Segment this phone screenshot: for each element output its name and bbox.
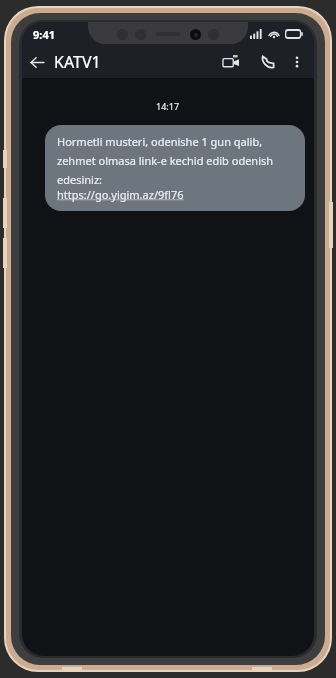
button[interactable]: Back [22, 47, 52, 77]
button[interactable]: Call [254, 48, 282, 76]
button[interactable]: Video call [216, 47, 246, 77]
staticText: 14:17 [156, 100, 180, 112]
staticText: 9:41 [33, 27, 55, 42]
staticText: https://go.yigim.az/9fl76 [57, 187, 184, 202]
staticText: KATV1 [54, 51, 101, 73]
button[interactable]: More options [284, 49, 310, 75]
button[interactable]: Hormetli musteri, odenishe 1 gun qalib, … [45, 125, 305, 211]
staticText: Hormetli musteri, odenishe 1 gun qalib, … [57, 134, 293, 187]
